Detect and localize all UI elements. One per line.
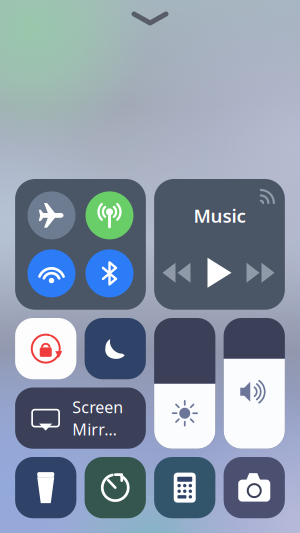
button[interactable]: Rotation Lock <box>15 318 76 379</box>
staticText: Mirroring <box>72 419 125 440</box>
button[interactable]: Close Control Center <box>0 0 300 37</box>
button[interactable]: Next <box>246 260 276 286</box>
staticText: Music <box>193 203 245 228</box>
staticText: Screen <box>72 396 123 418</box>
button[interactable]: Timer <box>85 457 146 518</box>
button[interactable]: Cellular Data <box>85 191 133 239</box>
button[interactable]: Camera <box>224 457 285 518</box>
button[interactable]: Volume <box>224 318 285 449</box>
button[interactable]: Previous <box>162 260 192 286</box>
button[interactable]: Bluetooth <box>85 249 133 297</box>
button[interactable]: Airplane Mode <box>27 191 75 239</box>
button[interactable]: Calculator <box>154 457 215 518</box>
button[interactable]: Flashlight <box>15 457 76 518</box>
button[interactable]: Wi-Fi <box>27 249 75 297</box>
button[interactable]: AirPlay <box>259 179 285 205</box>
button[interactable]: Brightness <box>154 318 215 449</box>
button[interactable]: Play <box>206 258 232 288</box>
button[interactable]: Do Not Disturb <box>85 318 146 379</box>
button[interactable]: Screen Mirroring <box>15 387 146 449</box>
